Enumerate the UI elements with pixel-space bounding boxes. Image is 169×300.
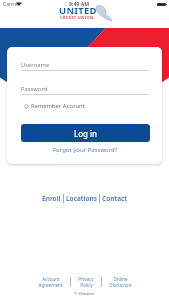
staticText: Account <box>42 276 60 282</box>
button[interactable]: Contact <box>100 194 130 203</box>
staticText: Privacy <box>78 276 94 282</box>
button[interactable]: Remember Account <box>24 102 85 110</box>
button[interactable]: Locations <box>64 194 99 203</box>
staticText: Policy <box>80 282 93 288</box>
staticText: UNITED <box>59 4 97 17</box>
staticText: Remember Account <box>31 102 85 110</box>
button[interactable]: Log in <box>21 124 150 142</box>
staticText: 9:49 AM <box>69 0 89 7</box>
staticText: © Sharetec <box>74 291 95 296</box>
staticText: Online <box>113 276 128 282</box>
staticText: Carrier <box>3 1 20 8</box>
staticText: Password <box>21 85 48 93</box>
staticText: CREDIT UNION <box>60 15 94 20</box>
button[interactable]: Forgot your Password? <box>53 146 118 154</box>
staticText: Username <box>21 61 50 69</box>
button[interactable]: Online <box>109 276 132 288</box>
staticText: Agreement <box>38 282 63 288</box>
staticText: Log in <box>74 128 98 139</box>
button[interactable]: Account <box>38 276 63 288</box>
staticText: Disclosure <box>109 282 132 288</box>
button[interactable]: Enroll <box>40 194 63 203</box>
button[interactable]: Privacy <box>78 276 94 288</box>
